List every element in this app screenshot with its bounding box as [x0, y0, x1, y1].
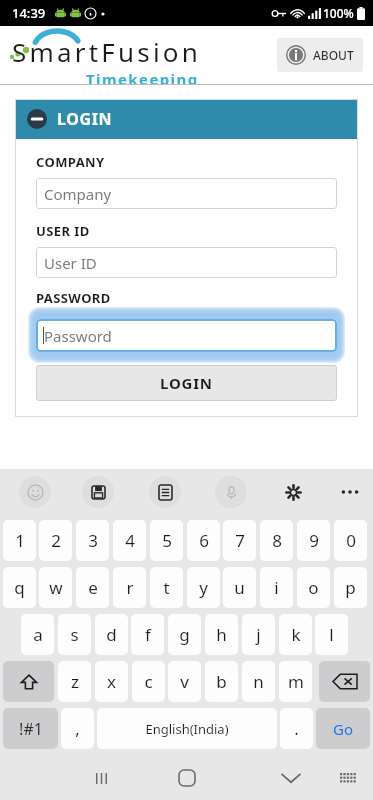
button[interactable]: Hide keyboard [274, 761, 308, 795]
button[interactable]: f [131, 614, 164, 655]
button[interactable]: b [205, 661, 238, 702]
button[interactable]: y [187, 567, 220, 608]
button[interactable]: User ID [36, 247, 337, 278]
staticText: l [329, 623, 334, 646]
staticText: LOGIN [57, 108, 113, 130]
button[interactable]: s [58, 614, 91, 655]
button[interactable]: c [132, 661, 165, 702]
button[interactable]: Emoji [19, 476, 51, 508]
button[interactable]: 5 [150, 520, 183, 561]
staticText: f [145, 623, 151, 646]
staticText: 0 [346, 529, 356, 552]
button[interactable]: x [95, 661, 128, 702]
staticText: i [274, 576, 279, 599]
button[interactable]: English(India) [97, 708, 277, 749]
button[interactable]: q [3, 567, 36, 608]
button[interactable]: More options [339, 481, 361, 503]
button[interactable]: Go [316, 708, 370, 749]
staticText: COMPANY [36, 153, 105, 171]
staticText: 3 [88, 529, 98, 552]
button[interactable]: . [280, 708, 313, 749]
button[interactable]: ABOUT [277, 38, 363, 72]
button[interactable]: d [95, 614, 128, 655]
button[interactable]: 4 [113, 520, 146, 561]
button[interactable]: v [168, 661, 201, 702]
button[interactable]: Keyboard layout [333, 763, 363, 793]
staticText: Go [333, 719, 353, 739]
button[interactable]: k [279, 614, 312, 655]
staticText: English(India) [145, 720, 229, 738]
button[interactable]: 3 [76, 520, 109, 561]
button[interactable]: g [168, 614, 201, 655]
staticText: t [163, 576, 170, 599]
staticText: u [234, 576, 245, 599]
button[interactable]: 0 [334, 520, 367, 561]
button[interactable]: a [21, 614, 54, 655]
button[interactable]: 7 [223, 520, 256, 561]
staticText: 14:39 [12, 4, 46, 22]
staticText: 1 [15, 529, 25, 552]
button[interactable]: 8 [260, 520, 293, 561]
staticText: o [308, 576, 319, 599]
button[interactable]: z [58, 661, 91, 702]
button[interactable]: 6 [187, 520, 220, 561]
staticText: 100% [323, 5, 354, 21]
staticText: USER ID [36, 222, 90, 240]
button[interactable]: Settings [277, 476, 309, 508]
staticText: Password [44, 326, 112, 346]
button[interactable]: Voice input [215, 476, 247, 508]
button[interactable]: Recent apps [84, 761, 118, 795]
staticText: s [70, 623, 79, 646]
button[interactable]: 1 [3, 520, 36, 561]
staticText: 5 [162, 529, 172, 552]
staticText: SmartFusion [12, 34, 202, 69]
button[interactable]: u [223, 567, 256, 608]
staticText: p [345, 576, 356, 599]
button[interactable]: !#1 [3, 708, 58, 749]
button[interactable]: Company [36, 178, 337, 209]
button[interactable]: Shift [3, 661, 54, 702]
staticText: v [180, 670, 189, 693]
button[interactable]: w [39, 567, 72, 608]
button[interactable]: Clipboard [82, 476, 114, 508]
staticText: a [33, 623, 43, 646]
other: Collapse [27, 109, 47, 129]
button[interactable]: Password [36, 319, 337, 352]
staticText: Company [44, 184, 112, 204]
button[interactable]: m [279, 661, 312, 702]
button[interactable]: o [297, 567, 330, 608]
button[interactable]: l [315, 614, 348, 655]
button[interactable]: Backspace [319, 661, 370, 702]
button[interactable]: n [242, 661, 275, 702]
button[interactable]: Collapse [15, 99, 358, 139]
button[interactable]: 2 [39, 520, 72, 561]
staticText: User ID [44, 253, 97, 273]
staticText: d [106, 623, 117, 646]
button[interactable]: e [76, 567, 109, 608]
button[interactable]: t [150, 567, 183, 608]
staticText: n [253, 670, 264, 693]
button[interactable]: 9 [297, 520, 330, 561]
staticText: 9 [309, 529, 319, 552]
button[interactable]: i [260, 567, 293, 608]
staticText: w [49, 576, 63, 599]
staticText: !#1 [19, 718, 43, 740]
staticText: Timekeeping [86, 69, 199, 84]
staticText: 8 [272, 529, 282, 552]
staticText: z [71, 670, 79, 693]
button[interactable]: LOGIN [36, 365, 337, 401]
staticText: LOGIN [160, 373, 213, 393]
button[interactable]: r [113, 567, 146, 608]
staticText: g [179, 623, 190, 646]
staticText: PASSWORD [36, 289, 111, 307]
button[interactable]: j [242, 614, 275, 655]
staticText: b [216, 670, 227, 693]
button[interactable]: h [205, 614, 238, 655]
staticText: 7 [235, 529, 245, 552]
staticText: j [256, 623, 261, 646]
button[interactable]: Text [149, 476, 181, 508]
button[interactable]: p [334, 567, 367, 608]
button[interactable]: Home [170, 761, 204, 795]
button[interactable]: , [61, 708, 94, 749]
staticText: 6 [199, 529, 209, 552]
